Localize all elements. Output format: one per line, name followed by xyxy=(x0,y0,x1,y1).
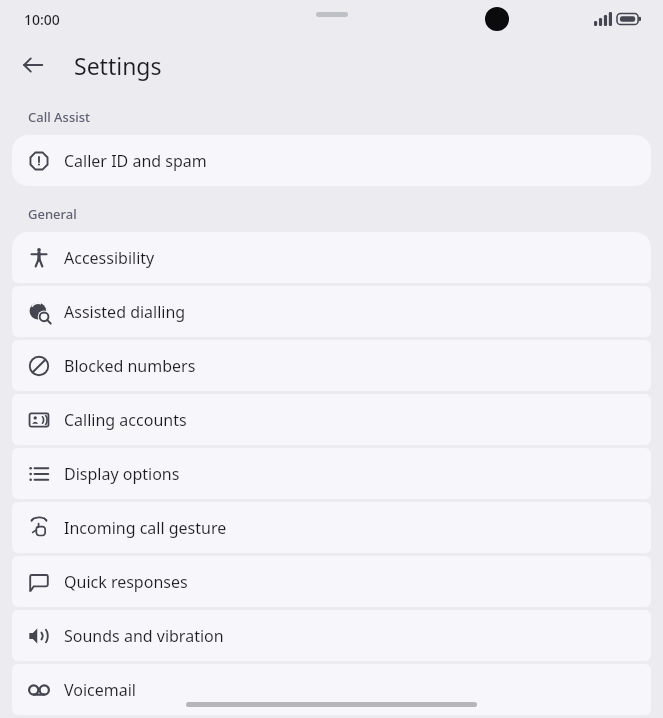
button[interactable]: Quick responses xyxy=(12,556,651,607)
staticText: Blocked numbers xyxy=(64,355,196,377)
button[interactable]: Voicemail xyxy=(12,664,651,715)
staticText: 10:00 xyxy=(24,10,60,29)
staticText: Assisted dialling xyxy=(64,301,186,323)
button[interactable]: Back xyxy=(11,43,55,87)
button[interactable]: Accessibility xyxy=(12,232,651,283)
staticText: General xyxy=(28,205,77,223)
button[interactable]: Display options xyxy=(12,448,651,499)
button[interactable]: Incoming call gesture xyxy=(12,502,651,553)
staticText: Sounds and vibration xyxy=(64,625,224,647)
staticText: Voicemail xyxy=(64,679,136,701)
button[interactable]: Assisted dialling xyxy=(12,286,651,337)
button[interactable]: Sounds and vibration xyxy=(12,610,651,661)
staticText: Incoming call gesture xyxy=(64,517,227,539)
button[interactable]: Calling accounts xyxy=(12,394,651,445)
staticText: Settings xyxy=(74,50,162,81)
button[interactable]: Blocked numbers xyxy=(12,340,651,391)
staticText: Quick responses xyxy=(64,571,188,593)
staticText: Display options xyxy=(64,463,180,485)
staticText: Calling accounts xyxy=(64,409,187,431)
staticText: Caller ID and spam xyxy=(64,150,207,172)
staticText: Call Assist xyxy=(28,108,91,126)
button[interactable]: Caller ID and spam xyxy=(12,135,651,186)
staticText: Accessibility xyxy=(64,247,155,269)
